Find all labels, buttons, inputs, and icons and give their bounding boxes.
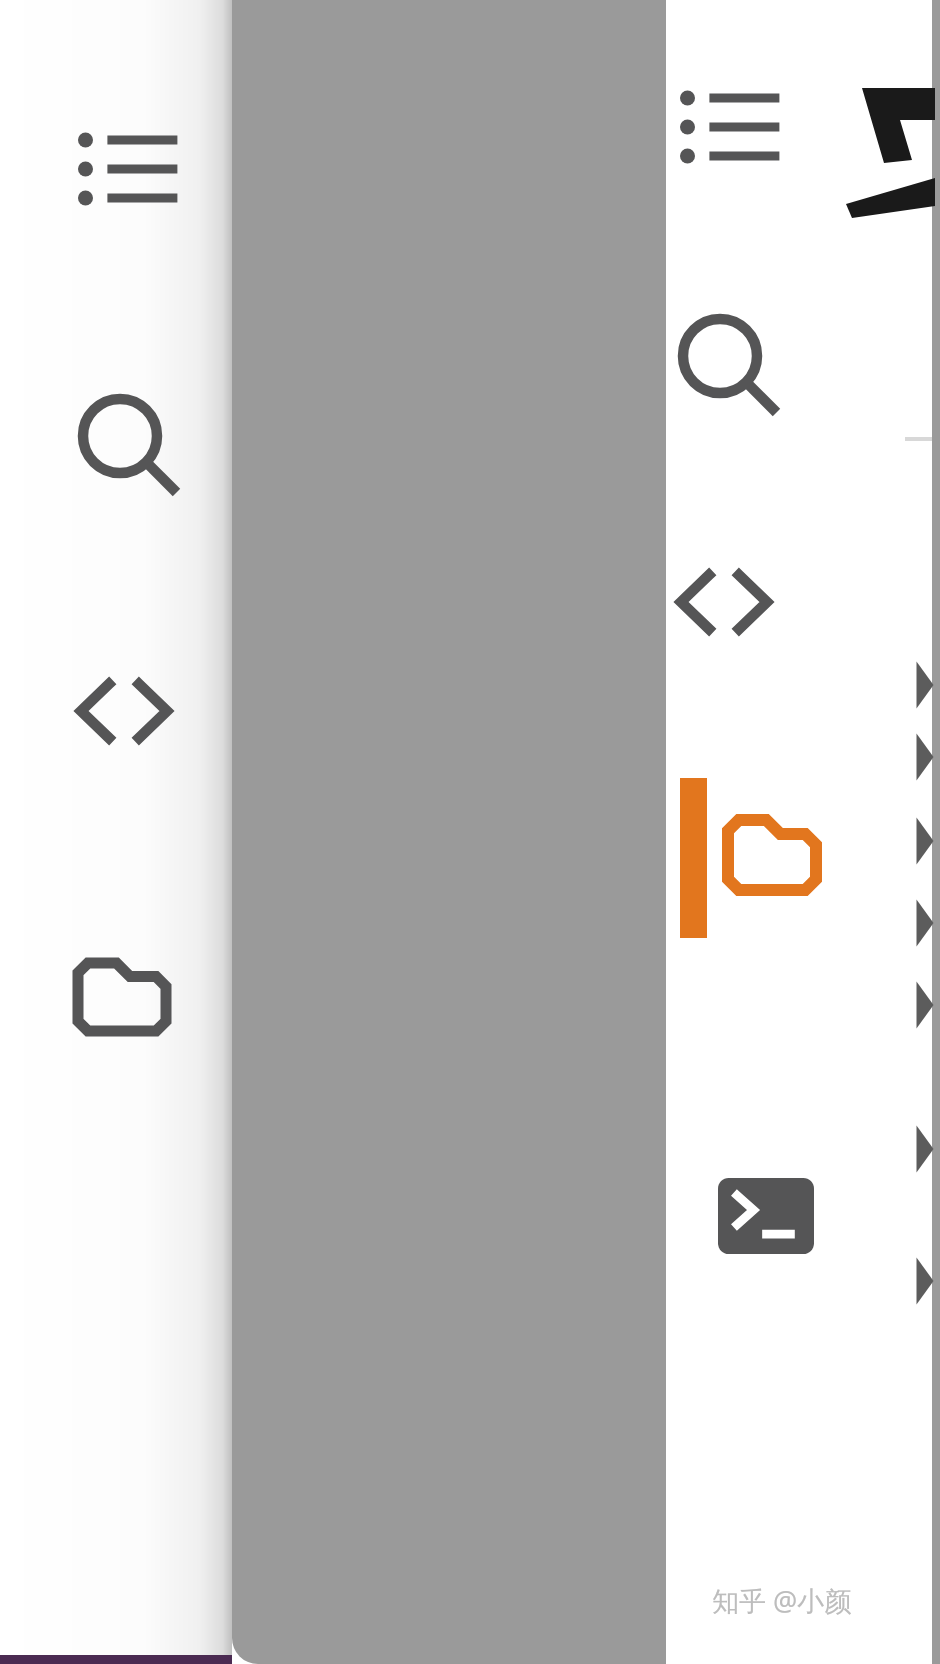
button[interactable]: Search: [662, 300, 790, 420]
button[interactable]: Structure: [60, 110, 188, 220]
button[interactable]: Search: [60, 380, 188, 500]
button[interactable]: Project files: [56, 935, 192, 1045]
button[interactable]: Code: [658, 556, 794, 648]
button[interactable]: Project files selected: [672, 772, 802, 944]
button[interactable]: Structure: [662, 72, 790, 182]
button[interactable]: Terminal: [700, 1160, 836, 1272]
button[interactable]: Code: [56, 665, 192, 757]
staticText: 知乎 @小颜: [712, 1582, 852, 1619]
